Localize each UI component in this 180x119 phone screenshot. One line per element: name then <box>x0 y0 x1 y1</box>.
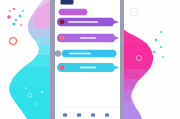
button[interactable] <box>0 0 180 119</box>
button[interactable] <box>0 0 180 119</box>
button[interactable]: Search <box>77 113 81 117</box>
button[interactable]: Search <box>58 9 87 15</box>
button[interactable]: Favourites <box>91 113 95 117</box>
button[interactable]: Profile <box>105 113 109 117</box>
button[interactable] <box>0 0 180 119</box>
button[interactable]: Home <box>63 113 67 117</box>
button[interactable] <box>0 0 180 119</box>
